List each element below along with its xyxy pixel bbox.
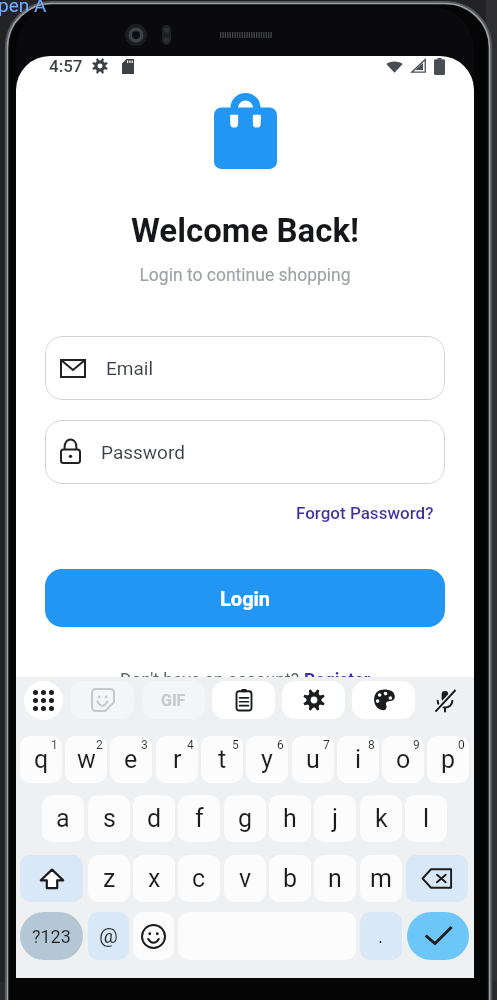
staticText: m [370,864,392,893]
staticText: l [423,804,430,833]
button[interactable]: l [405,795,447,842]
button[interactable]: Theme [352,681,415,719]
button[interactable]: Emoji [133,912,174,960]
button[interactable]: r [156,736,198,783]
button[interactable]: j [314,795,356,842]
staticText: 8 [368,738,375,752]
button[interactable]: c [178,855,220,902]
staticText: 0 [458,738,465,752]
staticText: k [375,804,388,833]
button[interactable]: n [314,855,356,902]
button[interactable]: d [133,795,175,842]
staticText: Forgot Password? [296,503,434,523]
staticText: 1 [51,738,58,752]
button[interactable]: . [360,912,402,960]
button[interactable]: a [42,795,84,842]
button[interactable]: @ [88,912,129,960]
button[interactable]: v [224,855,266,902]
button[interactable]: i [337,736,379,783]
button[interactable]: GIF [142,681,205,719]
button[interactable]: e [110,736,152,783]
button[interactable]: Voice input off [425,681,464,720]
staticText: e [124,745,138,774]
staticText: t [218,745,227,774]
button[interactable]: Clipboard [212,681,275,719]
staticText: Don't have an account? [120,670,304,691]
staticText: o [396,745,411,774]
button[interactable]: Register [304,670,371,691]
button[interactable]: Stickers [71,681,134,719]
button[interactable]: Email [45,336,445,400]
staticText: Login to continue shopping [16,265,474,286]
button[interactable]: Backspace [406,855,468,902]
button[interactable]: b [269,855,311,902]
button[interactable]: p [427,736,469,783]
staticText: 9 [413,738,420,752]
staticText: 4:57 [49,56,83,76]
staticText: q [34,745,49,774]
staticText: b [283,864,298,893]
staticText: s [103,804,116,833]
staticText: r [173,745,182,774]
staticText: j [332,804,338,833]
staticText: f [195,804,204,833]
button[interactable]: y [246,736,288,783]
button[interactable]: x [133,855,175,902]
staticText: pen A [0,0,47,16]
staticText: . [378,925,384,947]
button[interactable]: t [201,736,243,783]
button[interactable]: ?123 [20,912,83,960]
button[interactable]: f [178,795,220,842]
button[interactable]: Enter [407,912,469,960]
staticText: a [56,804,70,833]
staticText: c [192,864,206,893]
button[interactable]: Switch keyboard [24,681,63,720]
staticText: Login [220,587,271,610]
staticText: h [283,804,297,833]
button[interactable]: w [65,736,107,783]
staticText: x [148,864,161,893]
button[interactable]: g [224,795,266,842]
button[interactable]: s [88,795,130,842]
staticText: Email [106,357,154,379]
staticText: 2 [96,738,103,752]
staticText: w [77,745,96,774]
staticText: ?123 [32,926,71,947]
button[interactable]: Settings [282,681,345,719]
button[interactable]: m [360,855,402,902]
button[interactable]: Login [45,569,445,627]
button[interactable]: h [269,795,311,842]
button[interactable]: q [20,736,62,783]
staticText: z [103,864,116,893]
staticText: d [147,804,162,833]
staticText: 6 [277,738,284,752]
staticText: 5 [232,738,239,752]
staticText: v [239,864,252,893]
button[interactable]: Shift [20,855,83,902]
staticText: Password [101,441,185,463]
button[interactable]: Forgot Password? [294,501,436,525]
staticText: y [261,745,273,774]
staticText: i [355,745,362,774]
staticText: 4 [187,738,194,752]
staticText: n [328,864,342,893]
button[interactable]: z [88,855,130,902]
button[interactable]: Password [45,420,445,484]
staticText: g [238,804,253,833]
button[interactable]: k [360,795,402,842]
staticText: 7 [323,738,330,752]
staticText: 3 [141,738,148,752]
staticText: GIF [161,691,186,710]
staticText: Register [304,670,371,691]
staticText: Welcome Back! [16,211,474,250]
staticText: u [306,745,320,774]
staticText: p [441,745,456,774]
staticText: @ [99,924,118,949]
button[interactable]: u [292,736,334,783]
button[interactable]: o [382,736,424,783]
